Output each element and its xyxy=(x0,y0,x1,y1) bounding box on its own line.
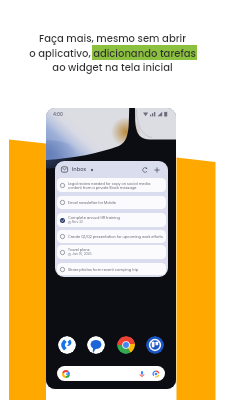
button[interactable]: Create Q1/Q2 presentation for upcoming w… xyxy=(57,230,166,243)
button[interactable]: Messages xyxy=(87,336,105,354)
staticText: Jan 16, 2026 xyxy=(72,252,92,257)
staticText: Complete annual HR training xyxy=(68,215,120,220)
staticText: Nov 22 xyxy=(72,220,83,225)
button[interactable]: Refresh xyxy=(140,165,150,175)
staticText: Inbox xyxy=(72,166,87,173)
staticText: o aplicativo, xyxy=(28,46,92,60)
staticText: ao widget na tela inicial xyxy=(52,60,173,74)
staticText: Email newsletter for Mobile xyxy=(68,200,116,205)
button[interactable]: Email newsletter for Mobile xyxy=(57,196,166,209)
staticText: Share photos from recent camping trip xyxy=(68,267,139,272)
button[interactable]: Legal review needed for copy on social m… xyxy=(57,178,166,192)
staticText: adicionando tarefas xyxy=(93,46,196,60)
button[interactable]: Complete annual HR training xyxy=(57,213,166,227)
button[interactable]: Add task xyxy=(152,165,162,175)
button[interactable] xyxy=(57,366,165,381)
button[interactable]: Share photos from recent camping trip xyxy=(57,263,166,275)
staticText: Legal review needed for copy on social m… xyxy=(68,181,163,190)
button[interactable]: Trello xyxy=(146,336,164,354)
staticText: Create Q1/Q2 presentation for upcoming w… xyxy=(68,234,163,239)
staticText: Travel plans xyxy=(68,247,90,252)
staticText: Faça mais, mesmo sem abrir xyxy=(39,31,186,45)
button[interactable]: Phone xyxy=(58,336,76,354)
button[interactable]: Chrome xyxy=(117,336,135,354)
staticText: 4:00 xyxy=(53,111,63,117)
button[interactable]: Travel plans xyxy=(57,245,166,259)
